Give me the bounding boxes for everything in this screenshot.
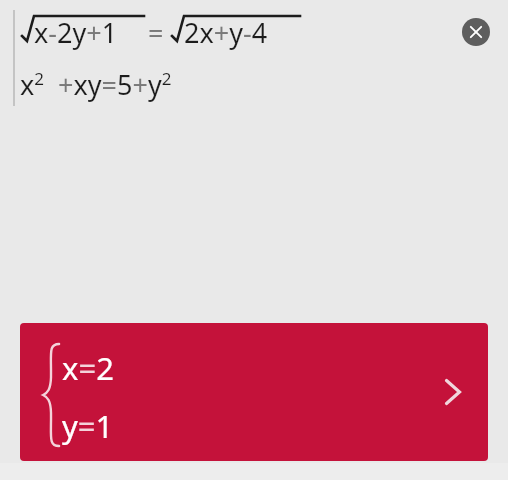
staticText: 2x+y-4 xyxy=(184,14,268,51)
button[interactable]: Show details xyxy=(428,367,478,417)
staticText: x-2y+1 xyxy=(34,14,118,51)
staticText: x2 +xy=5+y2 xyxy=(20,66,172,103)
button[interactable]: Close xyxy=(462,18,490,46)
staticText: y=1 xyxy=(62,405,114,447)
staticText: x=2 xyxy=(62,347,114,389)
staticText: = xyxy=(148,14,164,51)
button[interactable]: x=2 xyxy=(20,323,488,461)
